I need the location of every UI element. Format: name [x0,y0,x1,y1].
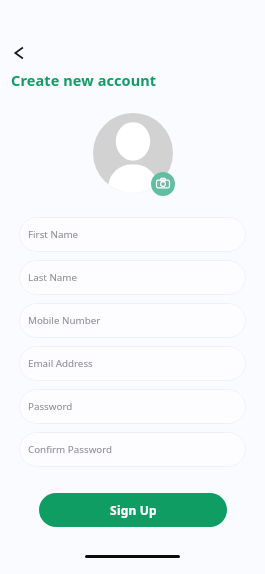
staticText: Confirm Password [28,443,113,456]
button[interactable]: Email Address [19,346,246,381]
staticText: Sign Up [110,502,157,518]
button[interactable]: Last Name [19,260,246,295]
button[interactable]: Back [6,40,32,66]
button[interactable]: Mobile Number [19,303,246,338]
button[interactable]: Confirm Password [19,432,246,467]
staticText: Email Address [28,357,93,370]
button[interactable]: Sign Up [39,493,227,527]
button[interactable]: Change profile photo [151,172,175,196]
staticText: Last Name [28,271,78,284]
staticText: Create new account [11,70,157,90]
staticText: Password [28,400,73,413]
button[interactable]: Password [19,389,246,424]
staticText: First Name [28,228,79,241]
staticText: Mobile Number [28,314,101,327]
button[interactable]: First Name [19,217,246,252]
